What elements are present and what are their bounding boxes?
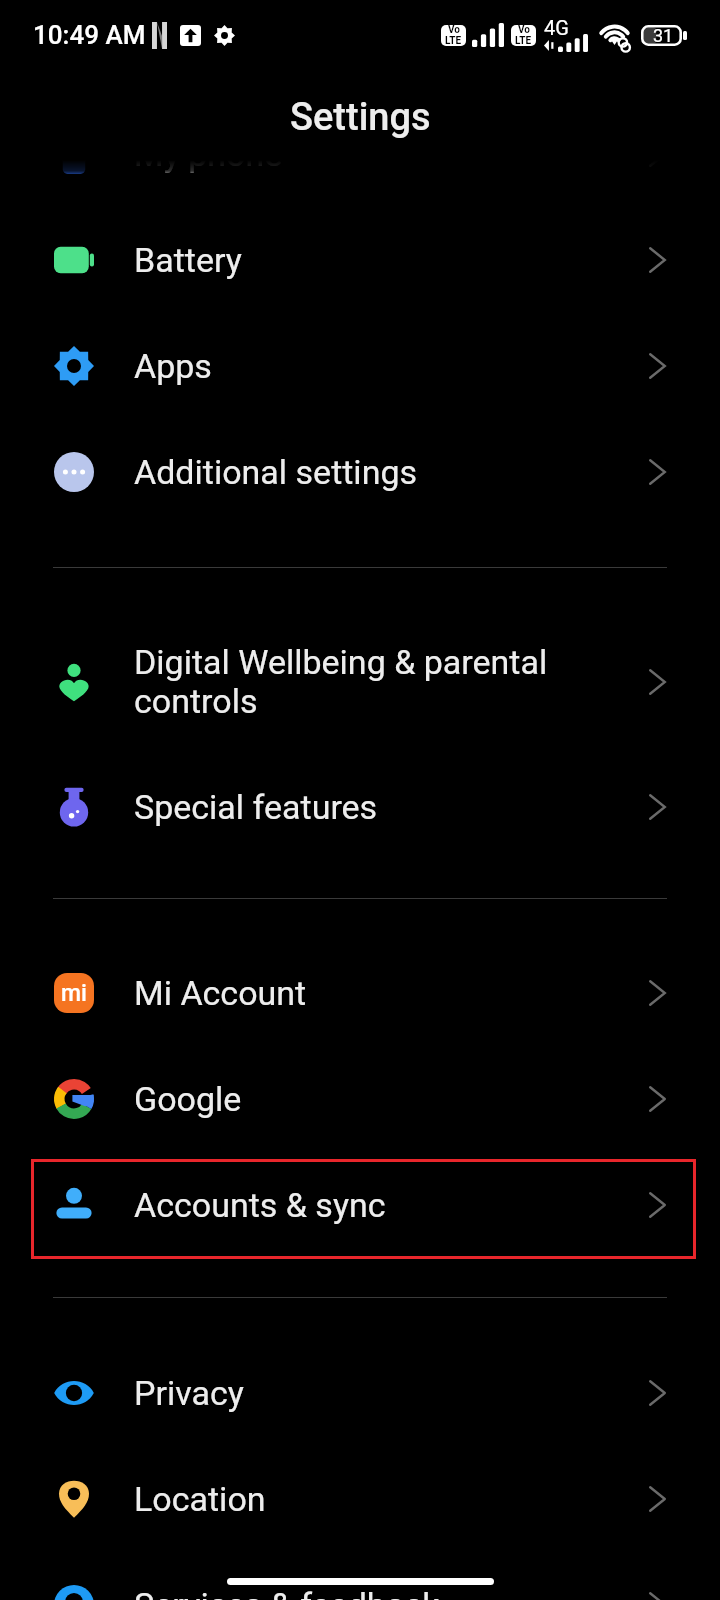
staticText: Accounts & sync bbox=[134, 1185, 386, 1225]
staticText: My phone bbox=[134, 134, 283, 174]
button[interactable]: Google bbox=[0, 1046, 720, 1152]
staticText: Vo bbox=[518, 25, 530, 36]
staticText: LTE bbox=[445, 35, 462, 44]
staticText: Vo bbox=[448, 25, 460, 36]
staticText: mi bbox=[61, 980, 87, 1007]
button[interactable]: Services & feedback bbox=[0, 1552, 720, 1600]
button[interactable]: Location bbox=[0, 1446, 720, 1552]
button[interactable]: Digital Wellbeing & parental controls bbox=[0, 609, 720, 754]
staticText: Apps bbox=[134, 346, 212, 386]
button[interactable]: Accounts & sync bbox=[0, 1152, 720, 1258]
staticText: Special features bbox=[134, 787, 378, 827]
button[interactable]: Special features bbox=[0, 754, 720, 860]
button[interactable]: Additional settings bbox=[0, 419, 720, 525]
button[interactable]: My phone bbox=[0, 101, 720, 207]
staticText: Settings bbox=[290, 95, 431, 140]
staticText: Location bbox=[134, 1479, 266, 1519]
button[interactable]: Privacy bbox=[0, 1340, 720, 1446]
staticText: Mi Account bbox=[134, 973, 307, 1013]
button[interactable]: Battery bbox=[0, 207, 720, 313]
staticText: 10:49 AM bbox=[33, 20, 146, 50]
staticText: 31 bbox=[653, 25, 674, 46]
staticText: 4G bbox=[544, 16, 569, 39]
button[interactable]: mi bbox=[0, 940, 720, 1046]
staticText: Privacy bbox=[134, 1373, 244, 1413]
staticText: Services & feedback bbox=[134, 1585, 440, 1600]
staticText: LTE bbox=[515, 35, 532, 44]
staticText: Battery bbox=[134, 240, 242, 280]
staticText: Additional settings bbox=[134, 452, 418, 492]
staticText: Google bbox=[134, 1079, 242, 1119]
staticText: Digital Wellbeing & parental controls bbox=[134, 642, 548, 721]
button[interactable]: Apps bbox=[0, 313, 720, 419]
